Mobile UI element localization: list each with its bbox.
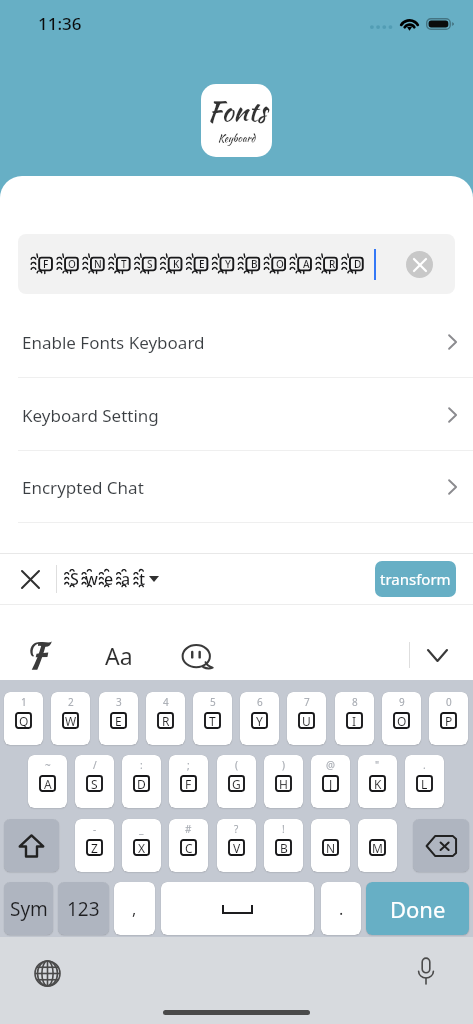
staticText: Keyboard	[218, 131, 256, 146]
button[interactable]: G	[217, 755, 256, 808]
button[interactable]: transform	[375, 561, 456, 597]
button[interactable]: Text size	[98, 620, 140, 662]
button[interactable]: K	[358, 755, 397, 808]
staticText: "	[375, 758, 380, 772]
staticText: F	[185, 776, 192, 792]
button[interactable]: X	[122, 819, 161, 872]
staticText: (	[235, 758, 238, 772]
staticText: 2	[68, 695, 74, 709]
staticText: W	[65, 713, 77, 729]
button[interactable]: Period	[321, 882, 361, 935]
button[interactable]: Fonts	[19, 620, 61, 662]
button[interactable]: Shift	[4, 819, 59, 872]
staticText: a	[121, 568, 131, 590]
button[interactable]: Encrypted Chat	[0, 451, 473, 523]
staticText: )	[282, 758, 285, 772]
staticText: N	[326, 840, 336, 856]
staticText: .	[339, 898, 344, 920]
staticText: S	[91, 776, 98, 792]
staticText: ,	[132, 898, 137, 920]
staticText: T	[121, 257, 127, 271]
staticText: @	[326, 758, 335, 772]
staticText: 4	[163, 695, 169, 709]
staticText: w	[85, 568, 98, 590]
staticText: E	[115, 713, 122, 729]
button[interactable]: F	[18, 234, 455, 294]
staticText: Sym	[10, 896, 48, 922]
staticText: Enable Fonts Keyboard	[22, 331, 205, 354]
staticText: Aa	[105, 640, 133, 671]
button[interactable]: Enable Fonts Keyboard	[0, 306, 473, 378]
button[interactable]: Y	[240, 692, 279, 745]
staticText: A	[44, 776, 52, 792]
button[interactable]: Space	[161, 882, 314, 935]
staticText: T	[209, 713, 216, 729]
button[interactable]: I	[335, 692, 374, 745]
button[interactable]: Numbers	[58, 882, 109, 935]
staticText: M	[372, 840, 383, 856]
button[interactable]: B	[264, 819, 303, 872]
button[interactable]: Symbols	[4, 882, 53, 935]
staticText: S	[70, 568, 79, 590]
staticText: 7	[304, 695, 310, 709]
button[interactable]: Collapse keyboard	[419, 623, 455, 659]
button[interactable]: S	[75, 755, 114, 808]
button[interactable]: S	[64, 562, 161, 596]
button[interactable]: Z	[75, 819, 114, 872]
staticText: ~	[45, 758, 51, 772]
button[interactable]: R	[146, 692, 185, 745]
staticText: .	[423, 758, 426, 772]
button[interactable]: Q	[4, 692, 43, 745]
button[interactable]: N	[311, 819, 350, 872]
staticText: K	[374, 776, 382, 792]
staticText: R	[162, 713, 170, 729]
staticText: Keyboard Setting	[22, 404, 159, 427]
staticText: C	[185, 840, 193, 856]
staticText: A	[303, 257, 310, 271]
button[interactable]: Emoji	[176, 620, 218, 662]
staticText: _	[139, 822, 144, 836]
button[interactable]: Keyboard Setting	[0, 379, 473, 451]
staticText: ;	[187, 758, 190, 772]
button[interactable]: Done	[366, 882, 469, 935]
button[interactable]: D	[122, 755, 161, 808]
button[interactable]: Voice input	[408, 953, 444, 989]
staticText: U	[302, 713, 311, 729]
staticText: L	[421, 776, 428, 792]
button[interactable]: Change language	[29, 955, 65, 991]
button[interactable]: V	[217, 819, 256, 872]
staticText: E	[199, 257, 205, 271]
button[interactable]: T	[193, 692, 232, 745]
button[interactable]: U	[287, 692, 326, 745]
button[interactable]: Close	[14, 563, 46, 595]
staticText: Q	[19, 713, 29, 729]
staticText: O	[68, 257, 76, 271]
staticText: O	[397, 713, 407, 729]
button[interactable]: P	[429, 692, 468, 745]
staticText: D	[137, 776, 146, 792]
button[interactable]: A	[28, 755, 67, 808]
button[interactable]: Clear text	[406, 251, 433, 278]
staticText: B	[280, 840, 288, 856]
button[interactable]: O	[382, 692, 421, 745]
staticText: I	[352, 713, 357, 729]
staticText: Y	[256, 713, 263, 729]
staticText: N	[94, 257, 102, 271]
button[interactable]: Backspace	[413, 819, 469, 872]
staticText: 5	[210, 695, 216, 709]
button[interactable]: F	[169, 755, 208, 808]
button[interactable]: M	[358, 819, 397, 872]
staticText: !	[282, 822, 285, 836]
button[interactable]: W	[51, 692, 90, 745]
button[interactable]: C	[169, 819, 208, 872]
staticText: #	[185, 822, 192, 836]
button[interactable]: H	[264, 755, 303, 808]
button[interactable]: L	[405, 755, 444, 808]
button[interactable]: E	[99, 692, 138, 745]
staticText: Encrypted Chat	[22, 476, 144, 499]
staticText: P	[445, 713, 453, 729]
staticText: 123	[67, 896, 100, 922]
button[interactable]: Comma	[114, 882, 155, 935]
button[interactable]: J	[311, 755, 350, 808]
staticText: /	[93, 758, 97, 772]
